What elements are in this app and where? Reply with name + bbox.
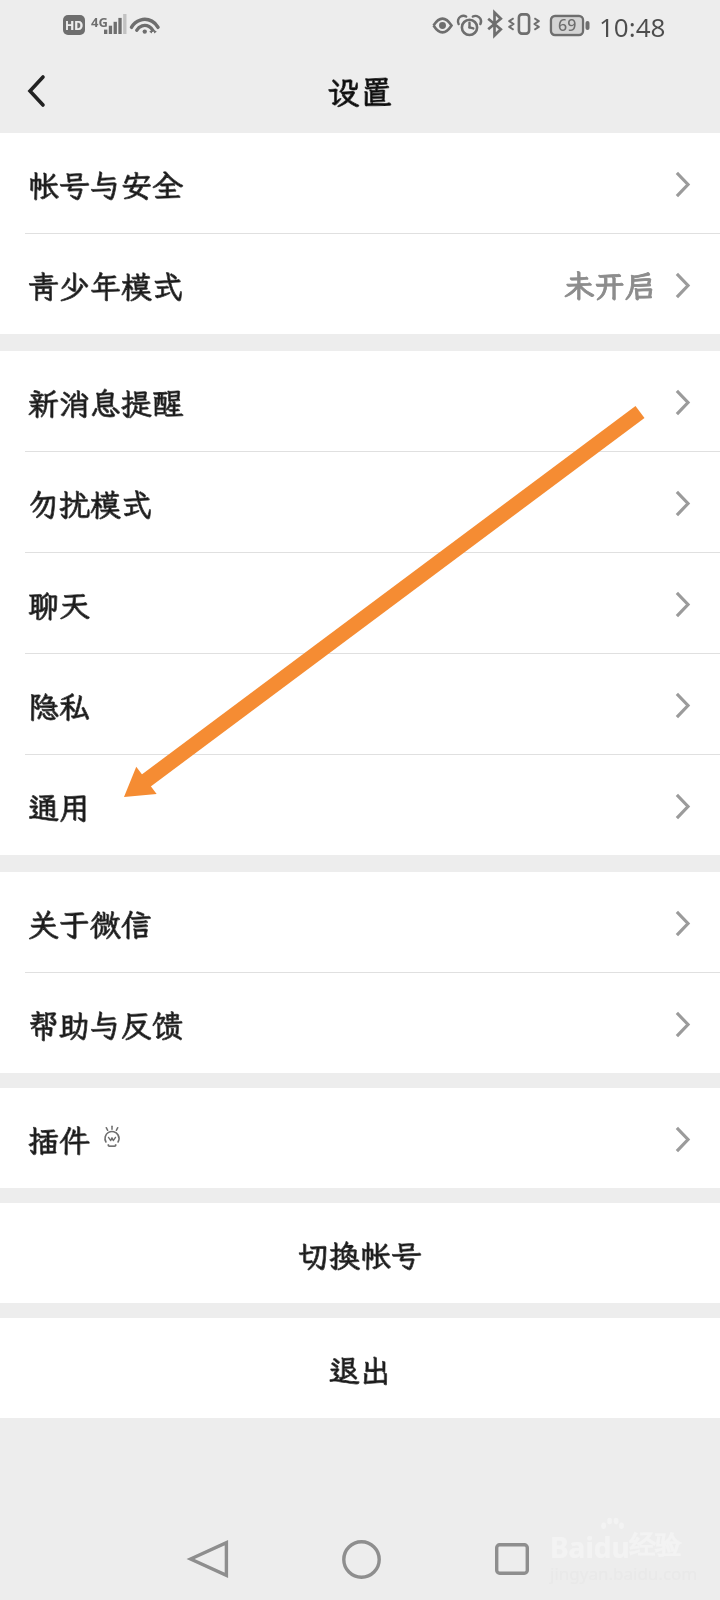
staticText: 青少年模式 [28, 266, 183, 307]
staticText: 切换帐号 [298, 1235, 422, 1276]
button[interactable]: 帮助与反馈 [0, 973, 720, 1073]
staticText: 隐私 [28, 686, 90, 727]
button[interactable]: 退出 [0, 1318, 720, 1418]
staticText: HD [65, 17, 83, 33]
staticText: 帐号与安全 [28, 165, 183, 206]
button[interactable]: Recents [459, 1509, 565, 1600]
staticText: 帮助与反馈 [28, 1005, 183, 1046]
staticText: 设置 [327, 70, 393, 113]
staticText: 帮助与反馈 [28, 1005, 183, 1046]
staticText: 10:48 [599, 9, 666, 44]
staticText: 4G [91, 13, 108, 31]
staticText: 青少年模式 [28, 266, 183, 307]
staticText: 勿扰模式 [28, 484, 152, 525]
staticText: 未开启 [564, 266, 656, 306]
staticText: 69 [558, 14, 577, 36]
staticText: 插件 [28, 1120, 90, 1161]
staticText: 新消息提醒 [28, 383, 183, 424]
staticText: 帐号与安全 [28, 165, 183, 206]
staticText: 退出 [329, 1350, 391, 1391]
staticText: 聊天 [28, 585, 90, 626]
staticText: 关于微信 [28, 904, 152, 945]
staticText: 关于微信 [28, 904, 152, 945]
button[interactable]: 聊天 [0, 553, 720, 653]
staticText: 新消息提醒 [28, 383, 183, 424]
staticText: 通用 [28, 787, 90, 828]
staticText: 隐私 [28, 686, 90, 727]
staticText: 插件 [28, 1120, 90, 1161]
staticText: 切换帐号 [298, 1235, 422, 1276]
button[interactable]: 通用 [0, 755, 720, 855]
button[interactable]: 关于微信 [0, 872, 720, 972]
button[interactable]: 隐私 [0, 654, 720, 754]
staticText: 设置 [327, 70, 393, 113]
button[interactable]: 插件 [0, 1088, 720, 1188]
button[interactable]: 青少年模式 [0, 234, 720, 334]
button[interactable]: Home [308, 1509, 414, 1600]
staticText: 退出 [329, 1350, 391, 1391]
staticText: 通用 [28, 787, 90, 828]
button[interactable]: 勿扰模式 [0, 452, 720, 552]
button[interactable]: 切换帐号 [0, 1203, 720, 1303]
button[interactable]: Back [5, 60, 67, 122]
button[interactable]: 帐号与安全 [0, 133, 720, 233]
staticText: 聊天 [28, 585, 90, 626]
staticText: 未开启 [564, 266, 656, 306]
staticText: 勿扰模式 [28, 484, 152, 525]
button[interactable]: 新消息提醒 [0, 351, 720, 451]
button[interactable]: Back [155, 1509, 261, 1600]
